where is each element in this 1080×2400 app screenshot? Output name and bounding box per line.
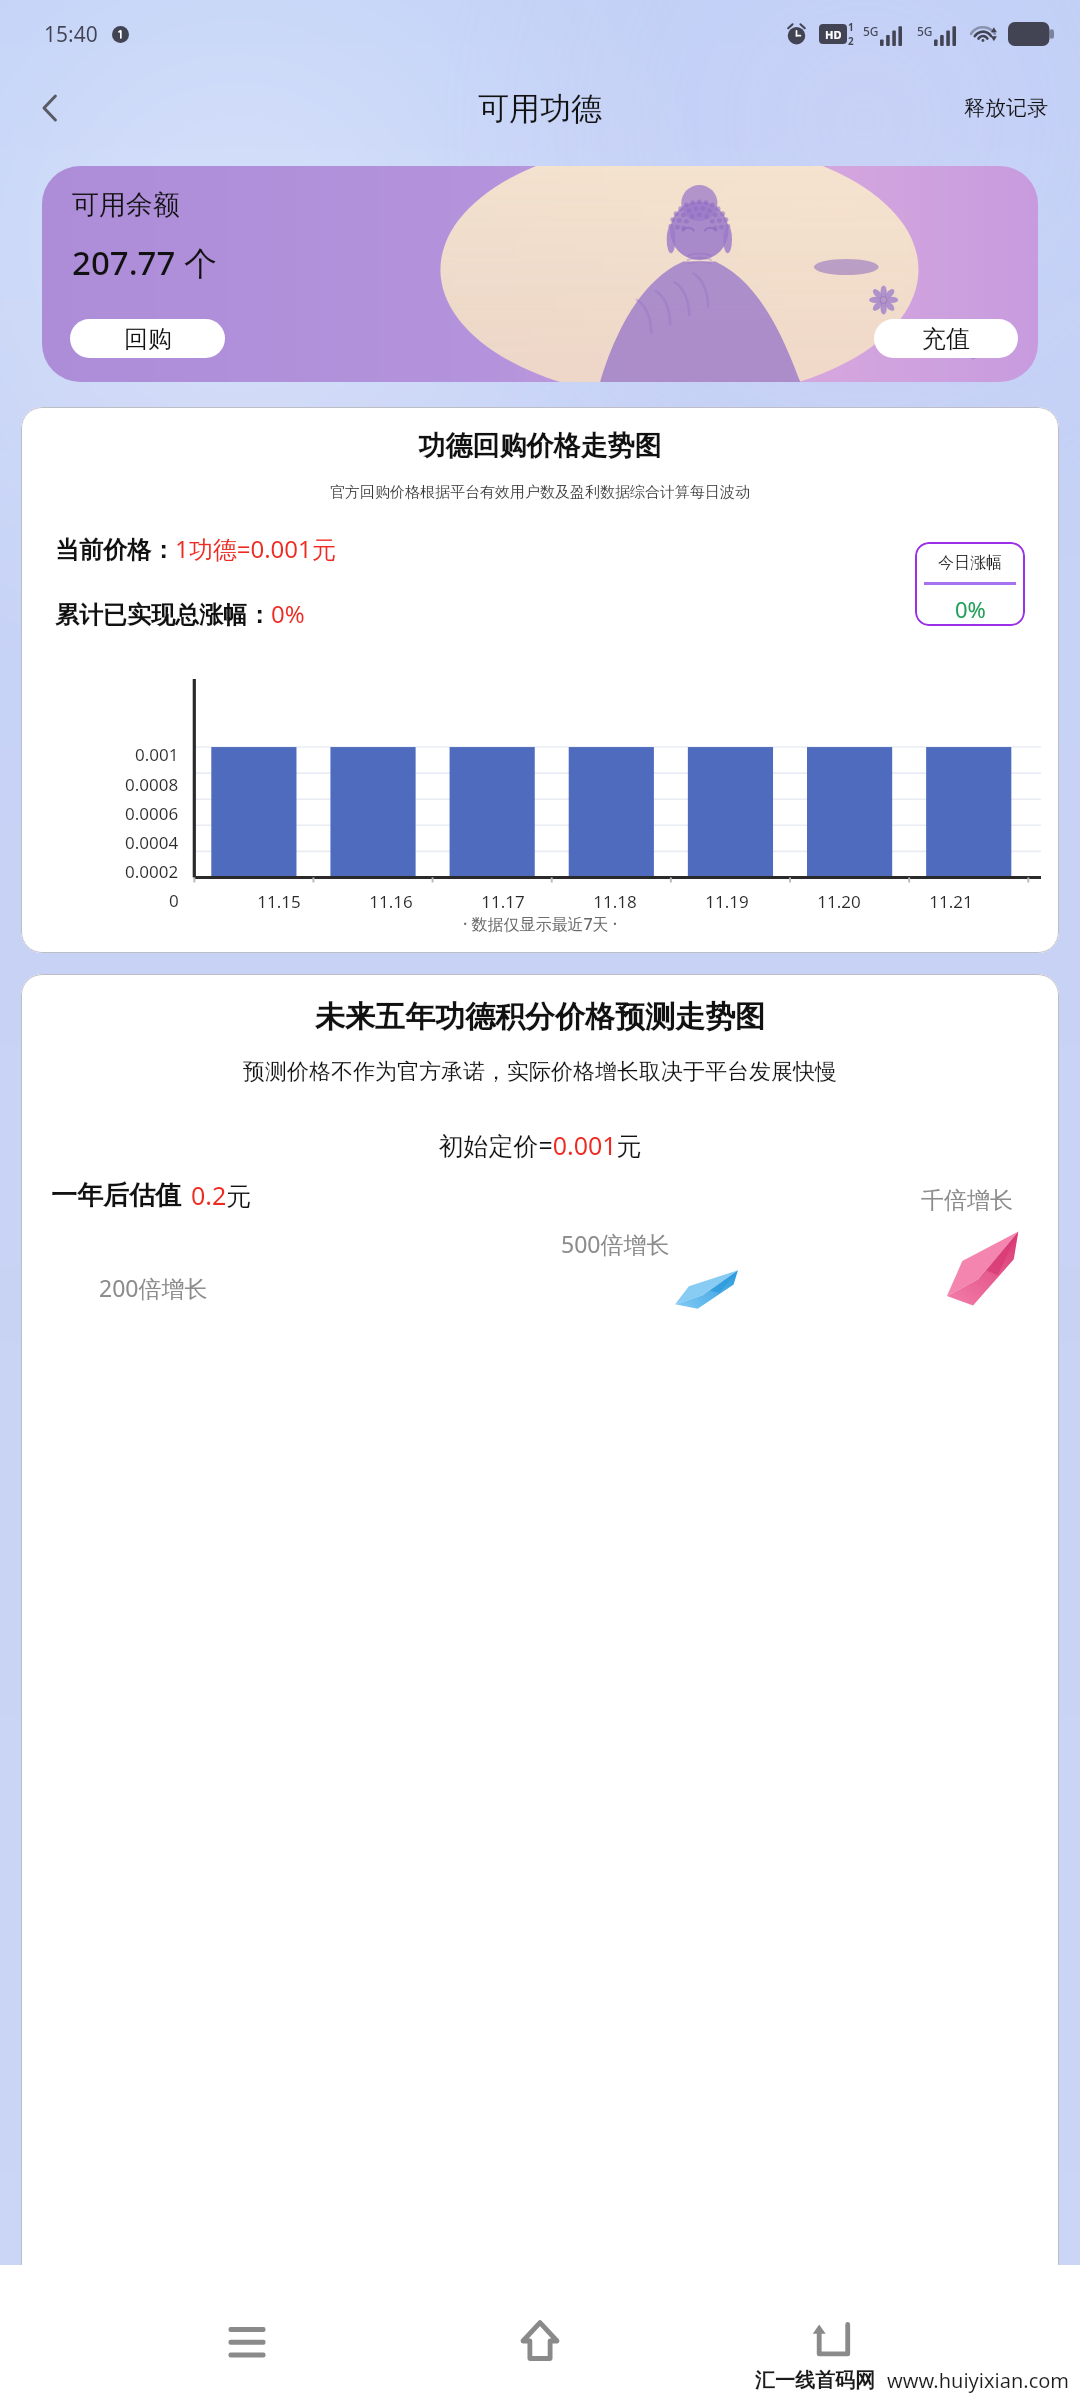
staticText: 11.16 xyxy=(369,890,413,913)
staticText: 500倍增长 xyxy=(561,1228,670,1259)
staticText: 11.15 xyxy=(257,890,301,913)
button[interactable]: Recent apps xyxy=(201,2295,293,2387)
button[interactable]: 充值 xyxy=(874,319,1018,358)
staticText: 207.77 个 xyxy=(72,240,217,285)
staticText: 0% xyxy=(955,594,986,624)
button[interactable]: 功德回购价格走势图 xyxy=(21,407,1059,953)
staticText: 1 xyxy=(848,20,854,34)
staticText: 预测价格不作为官方承诺，实际价格增长取决于平台发展快慢 xyxy=(37,1058,1043,1086)
button[interactable]: 回购 xyxy=(70,319,225,358)
button[interactable]: 今日涨幅 xyxy=(915,542,1025,626)
staticText: 回购 xyxy=(124,324,172,354)
staticText: HD xyxy=(825,27,842,42)
staticText: 可用余额 xyxy=(72,188,180,222)
staticText: 2 xyxy=(848,34,854,48)
button[interactable]: 释放记录 xyxy=(956,87,1056,129)
staticText: 千倍增长 xyxy=(921,1186,1013,1215)
staticText: 未来五年功德积分价格预测走势图 xyxy=(21,998,1059,1036)
staticText: 11.17 xyxy=(481,890,525,913)
staticText: 5G xyxy=(863,23,879,39)
staticText: 15:40 xyxy=(44,20,98,49)
staticText: · 数据仅显示最近7天 · xyxy=(21,913,1059,935)
staticText: 累计已实现总涨幅：0% xyxy=(55,597,305,630)
staticText: 初始定价=0.001元 xyxy=(21,1128,1059,1162)
staticText: 0 xyxy=(169,889,179,912)
staticText: 可用功德 xyxy=(478,89,602,128)
staticText: 11.18 xyxy=(593,890,637,913)
button[interactable]: 可用余额 xyxy=(42,166,1038,382)
staticText: 释放记录 xyxy=(964,95,1048,121)
staticText: 当前价格：1功德=0.001元 xyxy=(55,532,336,565)
staticText: 0.0008 xyxy=(125,773,179,796)
button[interactable]: Back xyxy=(787,2295,879,2387)
staticText: 200倍增长 xyxy=(99,1272,208,1303)
staticText: 充值 xyxy=(922,324,970,354)
staticText: 0.001 xyxy=(135,743,179,766)
staticText: 0.0006 xyxy=(125,802,179,825)
staticText: 11.20 xyxy=(817,890,861,913)
staticText: 一年后估值 xyxy=(51,1179,181,1212)
staticText: 0.0004 xyxy=(125,831,179,854)
staticText: 汇一线首码网 xyxy=(755,2368,875,2393)
staticText: 今日涨幅 xyxy=(938,553,1002,573)
staticText: 功德回购价格走势图 xyxy=(21,429,1059,463)
staticText: 11.21 xyxy=(929,890,973,913)
staticText: 官方回购价格根据平台有效用户数及盈利数据综合计算每日波动 xyxy=(35,483,1045,502)
staticText: 5G xyxy=(917,23,933,39)
staticText: 0.2元 xyxy=(191,1178,252,1212)
button[interactable]: Home xyxy=(494,2295,586,2387)
button[interactable]: 未来五年功德积分价格预测走势图 xyxy=(21,974,1059,2400)
button[interactable]: Back xyxy=(18,76,82,140)
staticText: 0.0002 xyxy=(125,860,179,883)
staticText: www.huiyixian.com xyxy=(887,2367,1070,2394)
staticText: 11.19 xyxy=(705,890,749,913)
